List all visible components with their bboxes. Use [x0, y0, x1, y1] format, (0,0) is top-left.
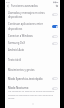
button[interactable]: Switch off [52, 35, 58, 38]
button[interactable]: Switch on [52, 25, 58, 28]
button[interactable]: Switch off [52, 13, 58, 16]
button[interactable]: Modo Speech-to-text rápido [5, 73, 60, 84]
button[interactable]: Android Auto [5, 47, 60, 53]
staticText: Conectar a Windows [8, 34, 33, 38]
button[interactable]: Movimientos y gestos [5, 67, 60, 73]
button[interactable]: Conectar a Windows [5, 33, 60, 39]
button[interactable]: Samsung DeX [5, 40, 60, 46]
button[interactable]: Switch off [52, 42, 58, 45]
staticText: Samsung DeX [8, 41, 25, 45]
button[interactable]: Texto táctil [5, 57, 60, 63]
button[interactable]: Back [6, 4, 10, 8]
staticText: ●●▬ [53, 1, 59, 3]
staticText: Android Auto [8, 48, 25, 52]
staticText: 9:41 [6, 1, 11, 4]
button[interactable]: Continuar aplicaciones entre dispositivo… [5, 20, 60, 32]
staticText: Continuar aplicaciones entre dispositivo… [8, 22, 51, 31]
button[interactable]: Search [55, 4, 59, 8]
button[interactable]: Switch off [52, 87, 58, 90]
staticText: Texto táctil [8, 58, 22, 62]
staticText: Funciones avanzadas [11, 4, 38, 8]
button[interactable]: Switch off [52, 77, 58, 80]
staticText: Llamadas y mensajes en otros dispositivo… [8, 11, 51, 19]
staticText: Modo Nocturno [8, 86, 29, 90]
button[interactable]: Llamadas y mensajes en otros dispositivo… [5, 10, 60, 19]
staticText: Modo Speech-to-text rápido [8, 77, 43, 81]
staticText: Las opciones se aplican de forma automát… [8, 90, 59, 99]
staticText: Movimientos y gestos [8, 68, 35, 72]
